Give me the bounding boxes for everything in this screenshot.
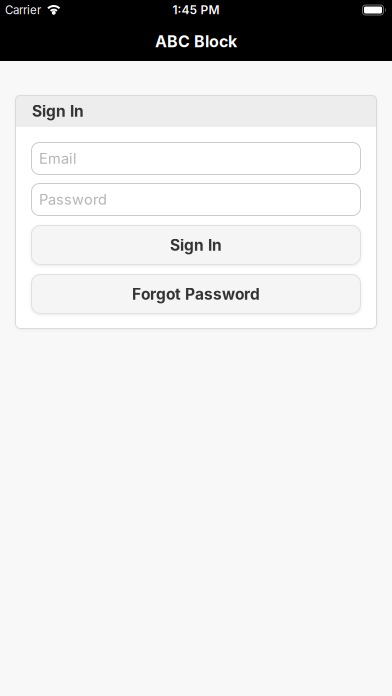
- secureTextField[interactable]: Password: [31, 183, 361, 216]
- staticText: Sign In: [32, 102, 84, 120]
- staticText: Sign In: [170, 236, 222, 254]
- button[interactable]: Sign In: [31, 225, 361, 265]
- staticText: Forgot Password: [132, 285, 260, 303]
- staticText: Password: [39, 191, 107, 208]
- staticText: 1:45 PM: [172, 3, 219, 17]
- staticText: ABC Block: [155, 32, 237, 51]
- staticText: Carrier: [5, 3, 41, 17]
- staticText: Email: [39, 150, 77, 167]
- textField[interactable]: Email: [31, 142, 361, 175]
- button[interactable]: Forgot Password: [31, 274, 361, 314]
